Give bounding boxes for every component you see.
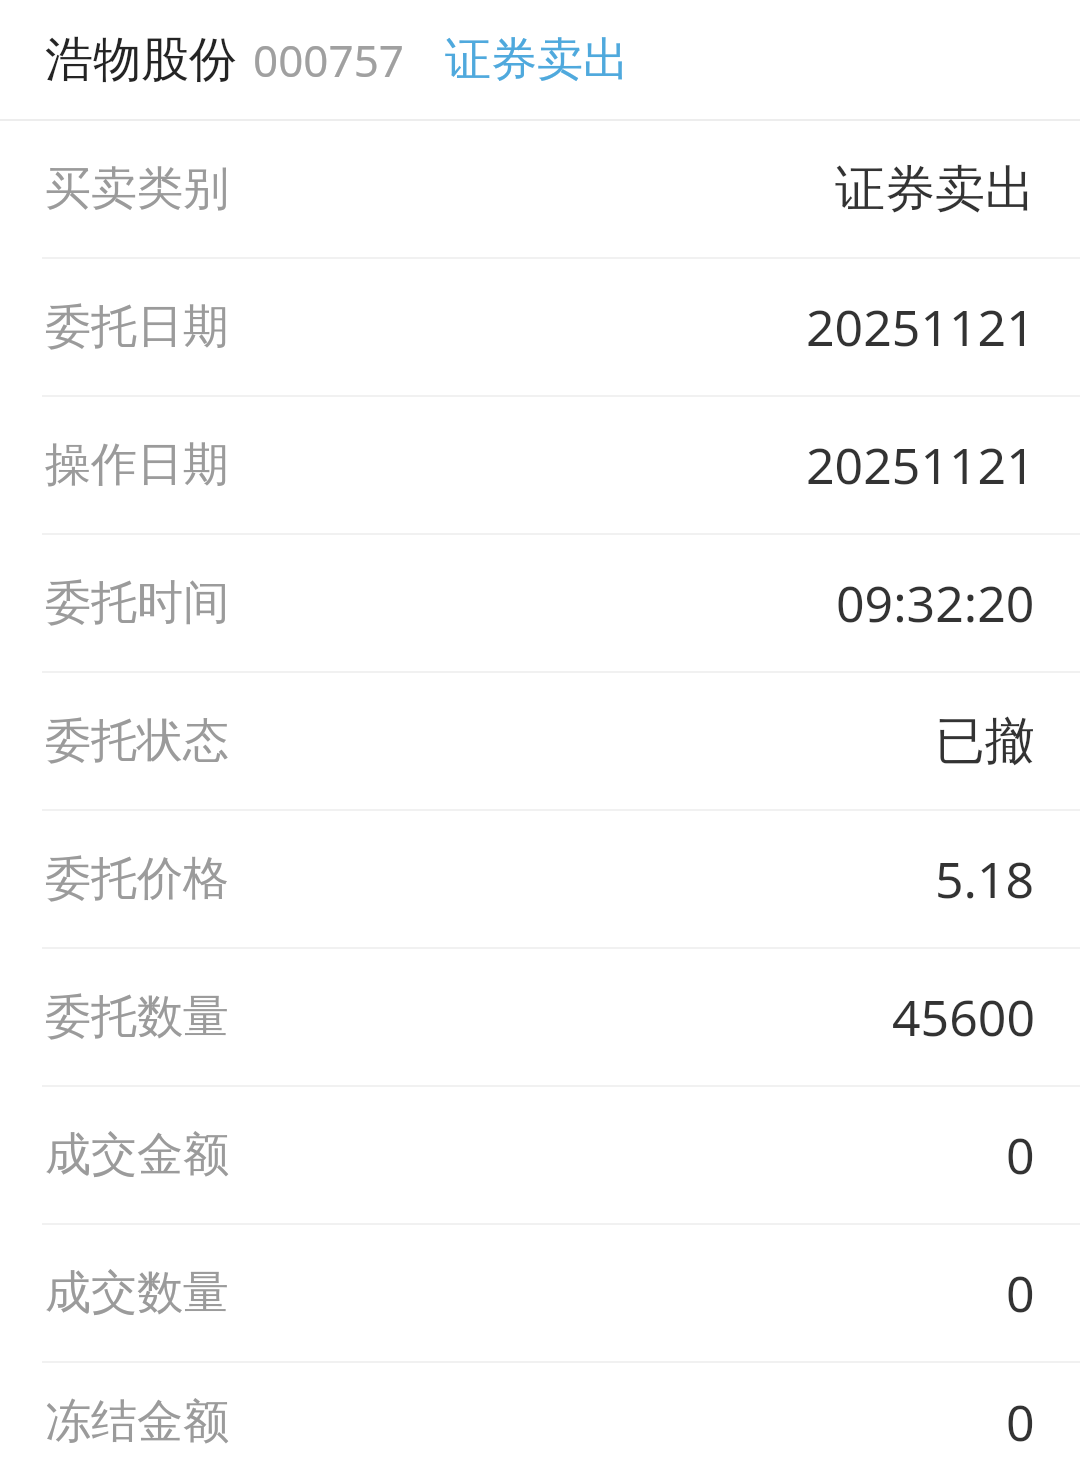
- button[interactable]: 买卖类别: [0, 121, 1080, 257]
- button[interactable]: 委托状态: [0, 673, 1080, 809]
- staticText: 委托价格: [45, 850, 229, 908]
- staticText: 操作日期: [45, 436, 229, 494]
- button[interactable]: 委托日期: [0, 259, 1080, 395]
- staticText: 委托状态: [45, 712, 229, 770]
- staticText: 000757: [253, 30, 405, 90]
- button[interactable]: 浩物股份: [0, 0, 1080, 119]
- staticText: 20251121: [806, 431, 1035, 499]
- staticText: 证券卖出: [835, 158, 1035, 221]
- staticText: 浩物股份: [45, 30, 237, 90]
- button[interactable]: 证券卖出: [445, 31, 629, 89]
- staticText: 20251121: [806, 293, 1035, 361]
- staticText: 09:32:20: [836, 569, 1035, 637]
- staticText: 委托日期: [45, 298, 229, 356]
- staticText: 委托时间: [45, 574, 229, 632]
- button[interactable]: 操作日期: [0, 397, 1080, 533]
- staticText: 5.18: [935, 845, 1035, 913]
- staticText: 冻结金额: [45, 1393, 229, 1451]
- staticText: 已撤: [935, 710, 1035, 773]
- staticText: 证券卖出: [445, 31, 629, 89]
- button[interactable]: 成交金额: [0, 1087, 1080, 1223]
- staticText: 成交数量: [45, 1264, 229, 1322]
- button[interactable]: 成交数量: [0, 1225, 1080, 1361]
- staticText: 0: [1006, 1121, 1035, 1189]
- staticText: 成交金额: [45, 1126, 229, 1184]
- button[interactable]: 委托数量: [0, 949, 1080, 1085]
- button[interactable]: 冻结金额: [0, 1363, 1080, 1481]
- button[interactable]: 委托时间: [0, 535, 1080, 671]
- staticText: 0: [1006, 1259, 1035, 1327]
- staticText: 45600: [892, 983, 1035, 1051]
- button[interactable]: 委托价格: [0, 811, 1080, 947]
- staticText: 0: [1006, 1388, 1035, 1456]
- staticText: 买卖类别: [45, 160, 229, 218]
- staticText: 委托数量: [45, 988, 229, 1046]
